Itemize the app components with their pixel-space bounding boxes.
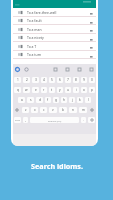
staticText: j xyxy=(72,98,73,102)
staticText: t xyxy=(51,88,53,92)
button[interactable]: GIF xyxy=(65,67,70,72)
button[interactable]: y xyxy=(57,87,63,93)
button[interactable]: 1 xyxy=(14,77,21,83)
staticText: y xyxy=(59,88,61,92)
button[interactable]: To a man xyxy=(13,25,96,34)
button[interactable]: i xyxy=(73,87,79,93)
staticText: k xyxy=(79,98,81,102)
button[interactable]: n xyxy=(69,107,77,113)
staticText: To a nicety xyxy=(27,35,44,40)
button[interactable]: Favourite xyxy=(89,26,94,32)
staticText: g xyxy=(55,98,57,102)
button[interactable]: d xyxy=(36,97,43,103)
button[interactable]: f xyxy=(45,97,51,103)
staticText: 2 xyxy=(26,78,28,82)
button[interactable]: l xyxy=(85,97,91,103)
button[interactable]: . xyxy=(81,117,86,123)
staticText: To a T xyxy=(27,44,37,49)
button[interactable]: To a fault xyxy=(13,17,96,25)
staticText: 3 xyxy=(35,78,37,82)
button[interactable]: Favourite xyxy=(89,18,94,24)
button[interactable]: Favourite xyxy=(89,9,94,15)
button[interactable]: 0 xyxy=(89,77,95,83)
button[interactable]: 2 xyxy=(23,77,30,83)
staticText: w xyxy=(25,88,28,92)
button[interactable]: m xyxy=(79,107,87,113)
button[interactable]: 8 xyxy=(73,77,79,83)
staticText: 5 xyxy=(51,78,53,82)
button[interactable]: a xyxy=(18,97,25,103)
button[interactable]: g xyxy=(53,97,59,103)
staticText: u xyxy=(67,88,69,92)
staticText: 1 xyxy=(17,78,19,82)
button[interactable]: Shift xyxy=(13,107,21,113)
button[interactable]: 9 xyxy=(81,77,87,83)
button[interactable]: Favourite xyxy=(89,35,94,41)
button[interactable]: o xyxy=(81,87,87,93)
button[interactable]: t xyxy=(49,87,55,93)
staticText: English (US) xyxy=(48,119,62,122)
staticText: 4 xyxy=(43,78,45,82)
staticText: b xyxy=(62,108,64,112)
button[interactable]: To a turn xyxy=(13,51,96,59)
staticText: a xyxy=(21,98,23,102)
button[interactable]: w xyxy=(23,87,30,93)
staticText: p xyxy=(91,88,93,92)
staticText: To a fare-thee-well xyxy=(27,10,57,15)
staticText: n xyxy=(72,108,74,112)
button[interactable]: Space xyxy=(30,117,79,123)
button[interactable]: q xyxy=(14,87,21,93)
staticText: f xyxy=(47,98,49,102)
button[interactable]: x xyxy=(31,107,38,113)
button[interactable]: Search xyxy=(88,117,95,123)
staticText: h xyxy=(63,98,65,102)
staticText: s xyxy=(30,98,32,102)
staticText: To a man xyxy=(27,27,42,32)
button[interactable]: 5 xyxy=(49,77,55,83)
button[interactable]: To a T xyxy=(13,42,96,51)
button[interactable]: 6 xyxy=(57,77,63,83)
staticText: r xyxy=(43,88,45,92)
button[interactable]: ?123 xyxy=(14,117,21,123)
staticText: , xyxy=(25,118,26,122)
button[interactable]: Backspace xyxy=(88,107,96,113)
button[interactable]: More xyxy=(89,67,94,72)
button[interactable]: Gboard xyxy=(15,67,20,72)
staticText: q xyxy=(17,88,19,92)
button[interactable]: z xyxy=(22,107,29,113)
button[interactable]: 4 xyxy=(41,77,47,83)
button[interactable]: 3 xyxy=(32,77,39,83)
staticText: i xyxy=(76,88,77,92)
staticText: To a fault xyxy=(27,18,42,23)
button[interactable]: To a fare-thee-well xyxy=(13,8,96,17)
button[interactable]: e xyxy=(32,87,39,93)
button[interactable]: p xyxy=(89,87,95,93)
staticText: Search idioms. xyxy=(31,161,83,171)
button[interactable]: k xyxy=(77,97,83,103)
button[interactable]: 7 xyxy=(65,77,71,83)
staticText: 0 xyxy=(91,78,93,82)
button[interactable]: h xyxy=(61,97,67,103)
button[interactable]: u xyxy=(65,87,71,93)
staticText: x xyxy=(34,108,36,112)
button[interactable]: , xyxy=(23,117,28,123)
button[interactable]: Favourite xyxy=(89,43,94,49)
button[interactable]: j xyxy=(69,97,75,103)
staticText: m xyxy=(82,108,85,112)
button[interactable]: c xyxy=(40,107,47,113)
staticText: z xyxy=(25,108,27,112)
staticText: . xyxy=(83,118,84,122)
button[interactable]: s xyxy=(27,97,34,103)
staticText: ?123 xyxy=(15,119,20,122)
button[interactable]: Themes xyxy=(77,67,82,72)
button[interactable]: Stickers xyxy=(53,67,58,72)
staticText: 9 xyxy=(83,78,85,82)
button[interactable]: v xyxy=(49,107,57,113)
button[interactable]: Search xyxy=(24,67,29,72)
button[interactable]: Favourite xyxy=(89,52,94,58)
button[interactable]: b xyxy=(59,107,67,113)
button[interactable]: r xyxy=(41,87,47,93)
staticText: d xyxy=(39,98,41,102)
staticText: o xyxy=(83,88,85,92)
button[interactable]: To a nicety xyxy=(13,34,96,42)
